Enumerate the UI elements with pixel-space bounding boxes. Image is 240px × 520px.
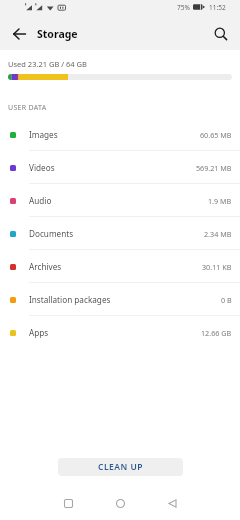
button[interactable]: CLEAN UP — [58, 458, 183, 476]
button[interactable] — [166, 497, 179, 510]
staticText: Installation packages — [29, 294, 111, 305]
staticText: Storage — [37, 27, 78, 41]
button[interactable]: Images — [0, 118, 240, 151]
button[interactable]: Audio — [0, 184, 240, 217]
button[interactable]: Installation packages — [0, 283, 240, 316]
staticText: 2.34 MB — [204, 229, 232, 239]
staticText: Videos — [29, 162, 55, 173]
button[interactable]: Documents — [0, 217, 240, 250]
button[interactable] — [62, 497, 75, 510]
staticText: 1.9 MB — [208, 196, 232, 206]
button[interactable]: Apps — [0, 316, 240, 349]
staticText: 75% — [177, 3, 190, 12]
staticText: Images — [29, 129, 58, 140]
button[interactable]: Videos — [0, 151, 240, 184]
staticText: 12.66 GB — [201, 328, 232, 338]
staticText: USER DATA — [8, 103, 47, 113]
staticText: CLEAN UP — [98, 461, 144, 473]
staticText: Documents — [29, 228, 74, 239]
staticText: 30.11 KB — [202, 262, 232, 272]
staticText: Used 23.21 GB / 64 GB — [8, 59, 87, 69]
staticText: Archives — [29, 261, 62, 272]
staticText: 0 B — [221, 295, 232, 305]
button[interactable]: Archives — [0, 250, 240, 283]
staticText: Apps — [29, 327, 49, 338]
button[interactable] — [7, 22, 31, 46]
staticText: 569.21 MB — [196, 163, 232, 173]
button[interactable] — [114, 497, 127, 510]
staticText: Audio — [29, 195, 52, 206]
staticText: 60.65 MB — [200, 130, 232, 140]
button[interactable] — [209, 22, 233, 46]
staticText: 11:52 — [209, 3, 226, 12]
